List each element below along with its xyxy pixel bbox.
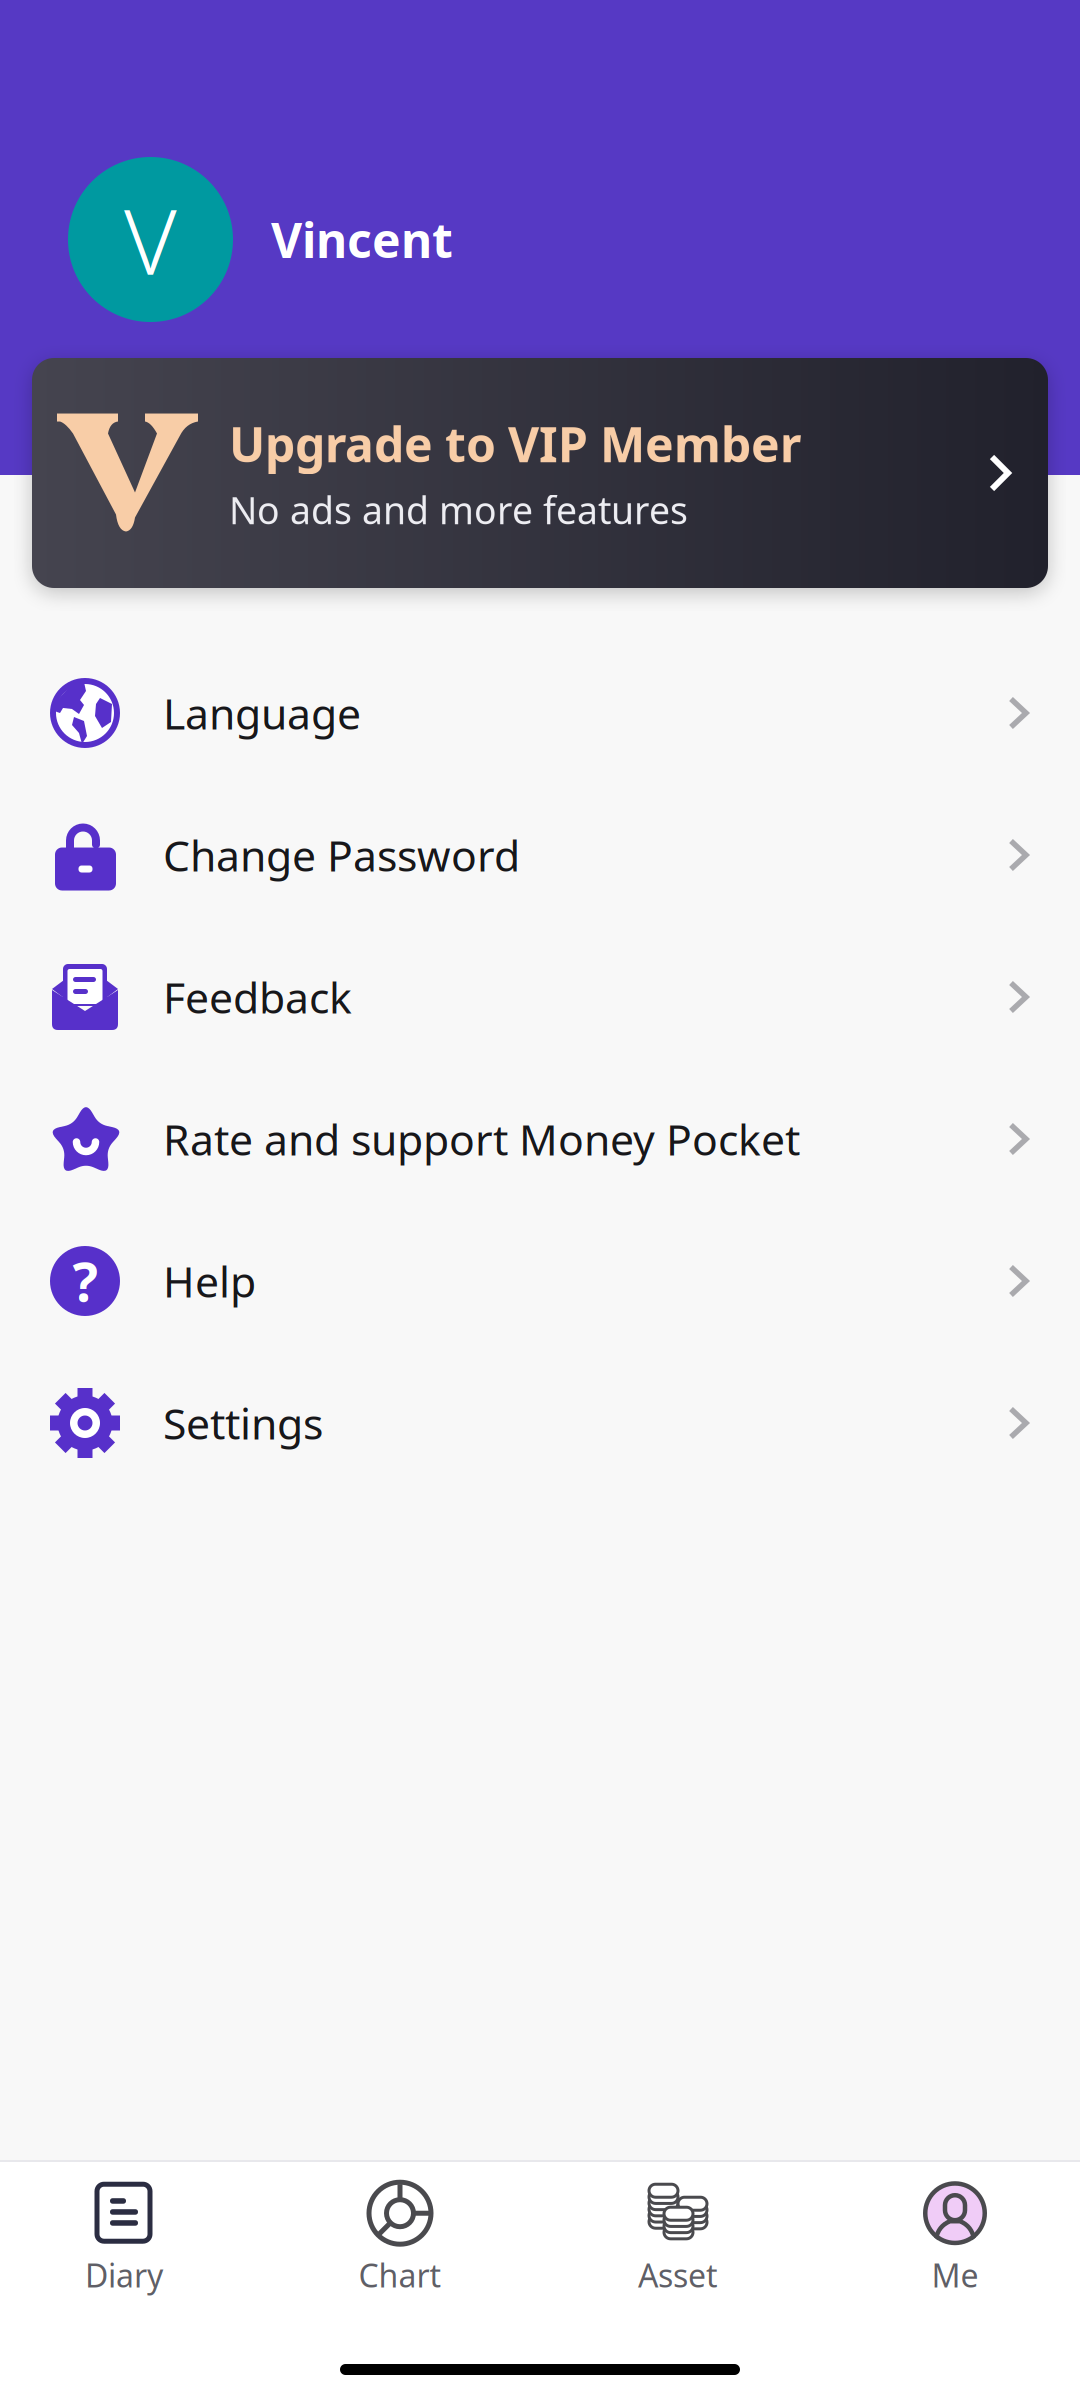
staticText: Language bbox=[163, 684, 361, 742]
staticText: Feedback bbox=[163, 968, 352, 1026]
staticText: Chart bbox=[358, 2253, 441, 2297]
staticText: ? bbox=[72, 1245, 97, 1317]
staticText: Upgrade to VIP Member bbox=[229, 411, 801, 476]
button[interactable]: Settings bbox=[0, 1352, 1080, 1494]
button[interactable]: Language bbox=[0, 642, 1080, 784]
button[interactable]: ? bbox=[0, 1210, 1080, 1352]
staticText: Change Password bbox=[163, 826, 520, 884]
button[interactable]: Chart bbox=[276, 2181, 524, 2297]
staticText: No ads and more features bbox=[229, 484, 688, 535]
staticText: Vincent bbox=[271, 207, 453, 272]
staticText: Me bbox=[931, 2253, 978, 2297]
button[interactable]: Me bbox=[831, 2181, 1079, 2297]
staticText: Rate and support Money Pocket bbox=[163, 1110, 800, 1168]
staticText: V bbox=[124, 178, 177, 301]
button[interactable]: Change Password bbox=[0, 784, 1080, 926]
staticText: Asset bbox=[638, 2253, 718, 2297]
button[interactable]: Asset bbox=[554, 2181, 802, 2297]
staticText: Help bbox=[163, 1252, 256, 1310]
staticText: Settings bbox=[163, 1394, 323, 1452]
button[interactable]: Feedback bbox=[0, 926, 1080, 1068]
button[interactable]: Rate and support Money Pocket bbox=[0, 1068, 1080, 1210]
staticText: Diary bbox=[85, 2253, 163, 2297]
button[interactable]: Upgrade to VIP Member bbox=[0, 358, 1080, 588]
button[interactable]: Diary bbox=[0, 2181, 248, 2297]
